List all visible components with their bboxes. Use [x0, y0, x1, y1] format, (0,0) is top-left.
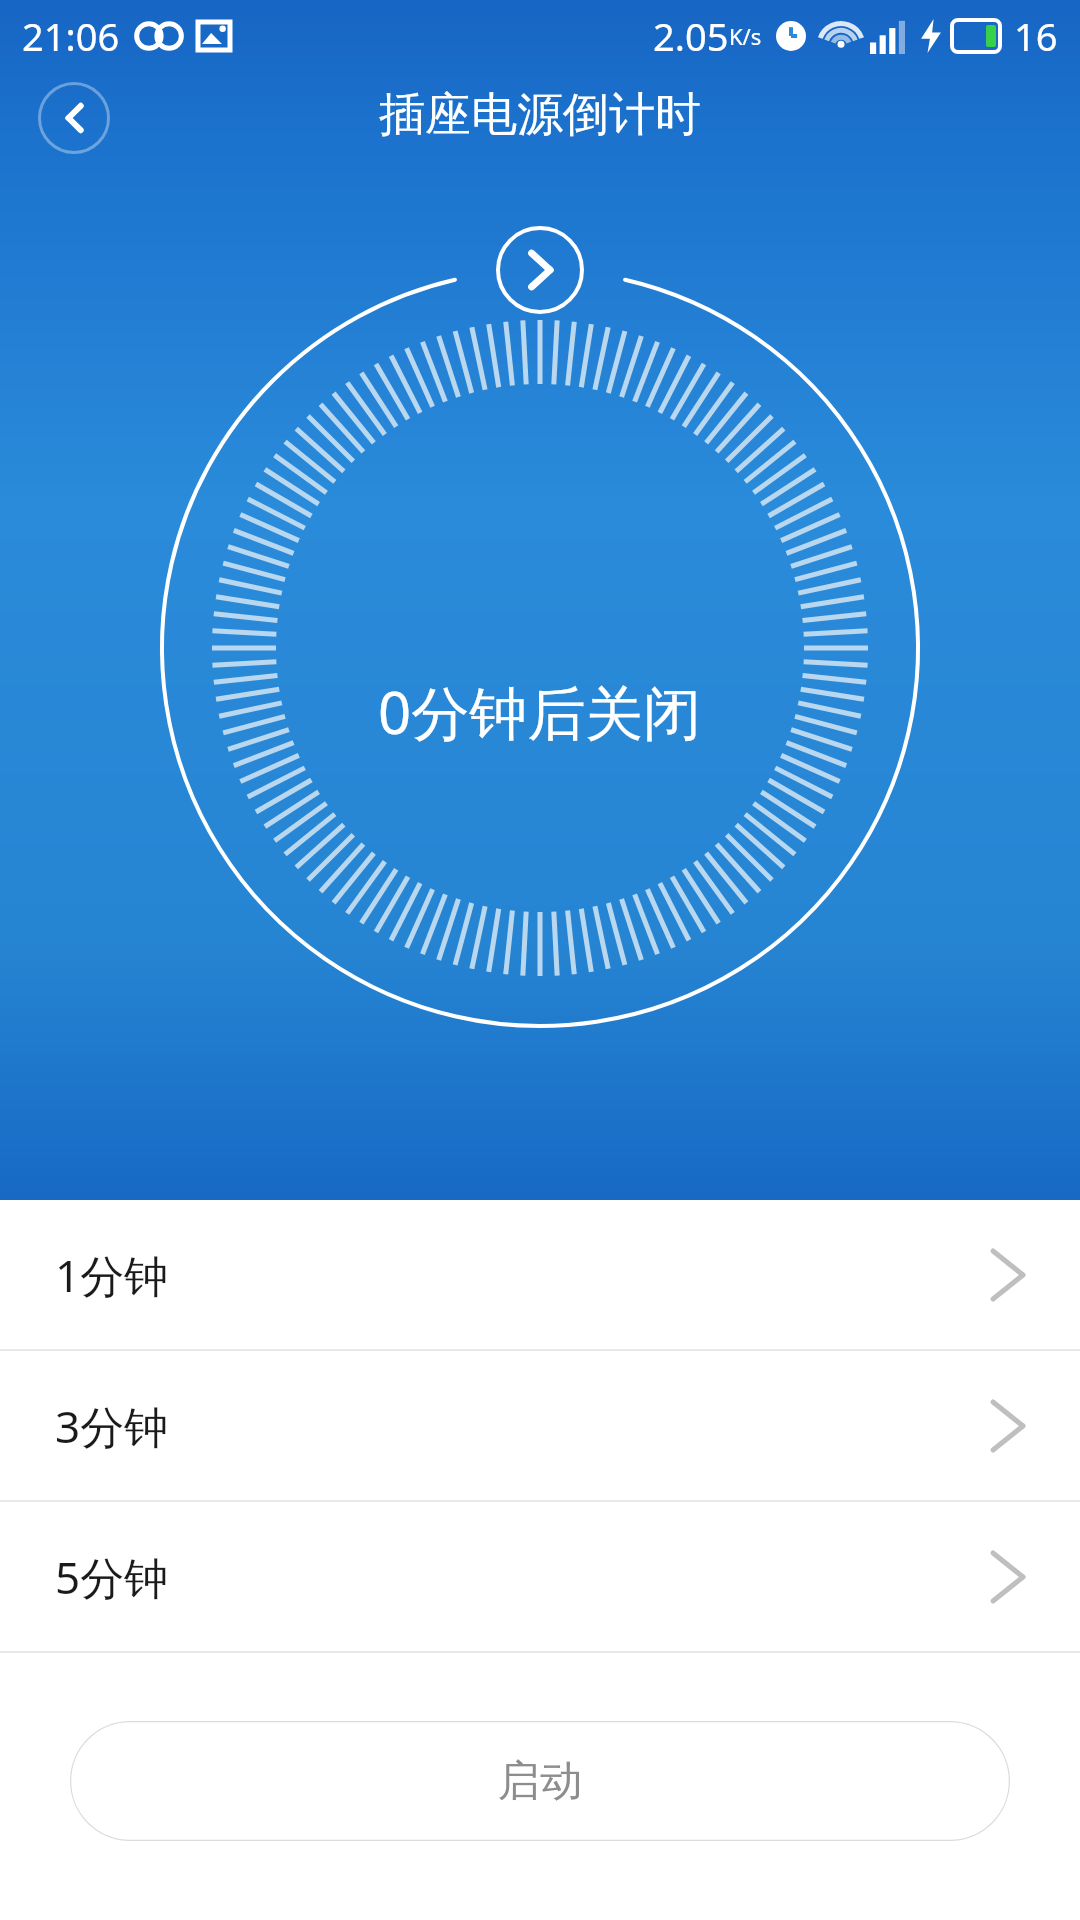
staticText: 0分钟后关闭 — [378, 672, 702, 751]
button[interactable]: Back — [38, 82, 110, 154]
button[interactable]: 1分钟 — [0, 1200, 1080, 1349]
button[interactable]: 启动 — [70, 1721, 1010, 1841]
button[interactable]: Adjust countdown — [498, 228, 582, 312]
staticText: 5分钟 — [55, 1547, 169, 1607]
staticText: 2.05 — [653, 10, 729, 62]
staticText: 3分钟 — [55, 1396, 169, 1456]
staticText: K/s — [729, 21, 762, 51]
button[interactable]: 5分钟 — [0, 1502, 1080, 1651]
staticText: 16 — [1014, 10, 1058, 62]
staticText: 1分钟 — [55, 1245, 169, 1305]
staticText: 启动 — [498, 1755, 582, 1808]
staticText: 21:06 — [22, 10, 120, 62]
staticText: 插座电源倒计时 — [379, 86, 701, 144]
button[interactable]: 3分钟 — [0, 1351, 1080, 1500]
